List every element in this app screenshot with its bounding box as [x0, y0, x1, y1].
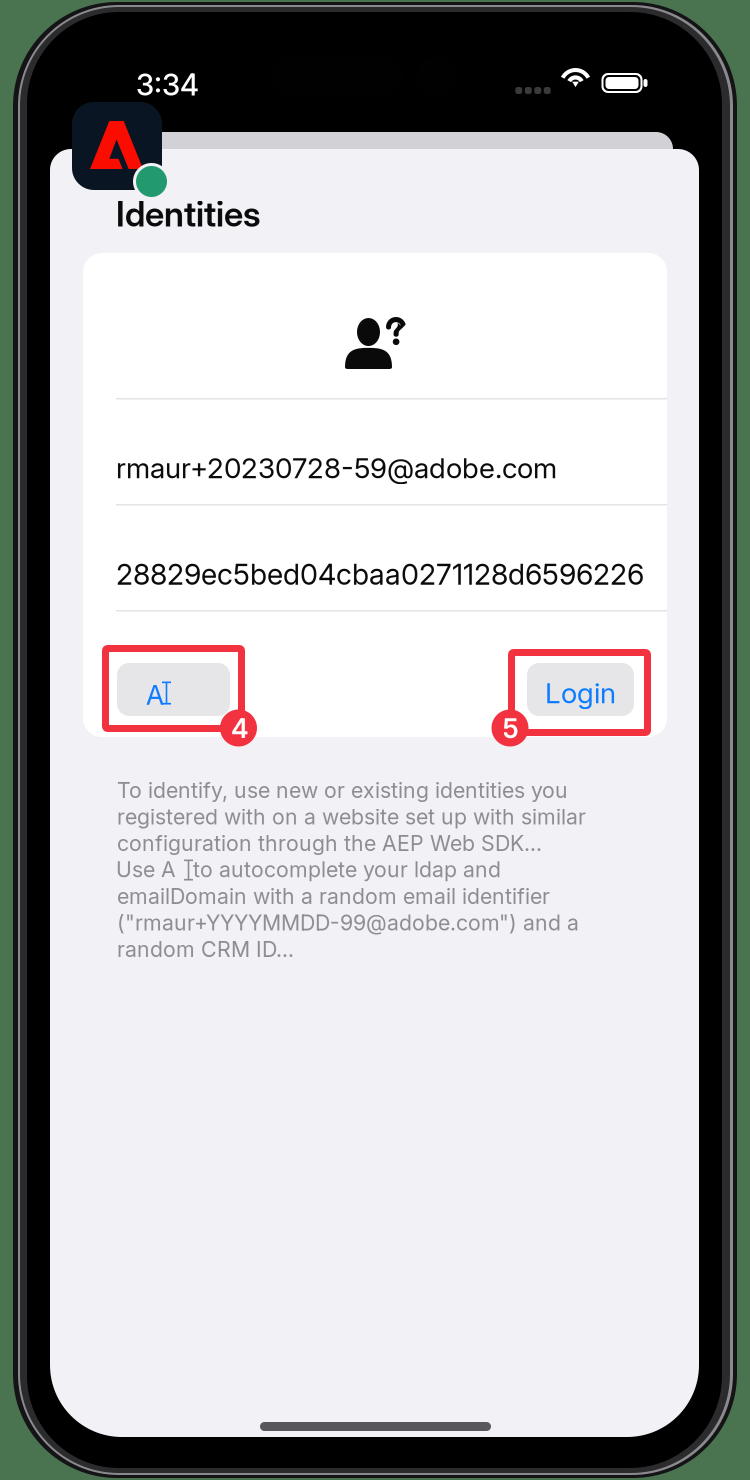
- staticText: To identify, use new or existing identit…: [117, 777, 568, 803]
- staticText: emailDomain with a random email identifi…: [117, 883, 550, 909]
- staticText: Use: [116, 856, 155, 882]
- staticText: 3:34: [136, 67, 199, 102]
- staticText: 4: [231, 712, 249, 745]
- staticText: registered with on a website set up with…: [117, 804, 586, 830]
- staticText: Identities: [116, 193, 261, 235]
- staticText: random CRM ID…: [117, 936, 294, 962]
- staticText: 28829ec5bed04cbaa0271128d6596226: [116, 557, 644, 592]
- staticText: ("rmaur+YYYYMMDD-99@adobe.com") and a: [117, 910, 579, 936]
- staticText: configuration through the AEP Web SDK…: [117, 830, 542, 856]
- button[interactable]: Autofill identity: [117, 663, 230, 716]
- staticText: A: [161, 856, 176, 882]
- staticText: 5: [502, 712, 518, 745]
- staticText: rmaur+20230728-59@adobe.com: [116, 451, 557, 485]
- staticText: to autocomplete your ldap and: [193, 856, 501, 882]
- staticText: Login: [545, 676, 616, 710]
- button[interactable]: Login: [527, 663, 634, 716]
- staticText: A: [146, 679, 164, 711]
